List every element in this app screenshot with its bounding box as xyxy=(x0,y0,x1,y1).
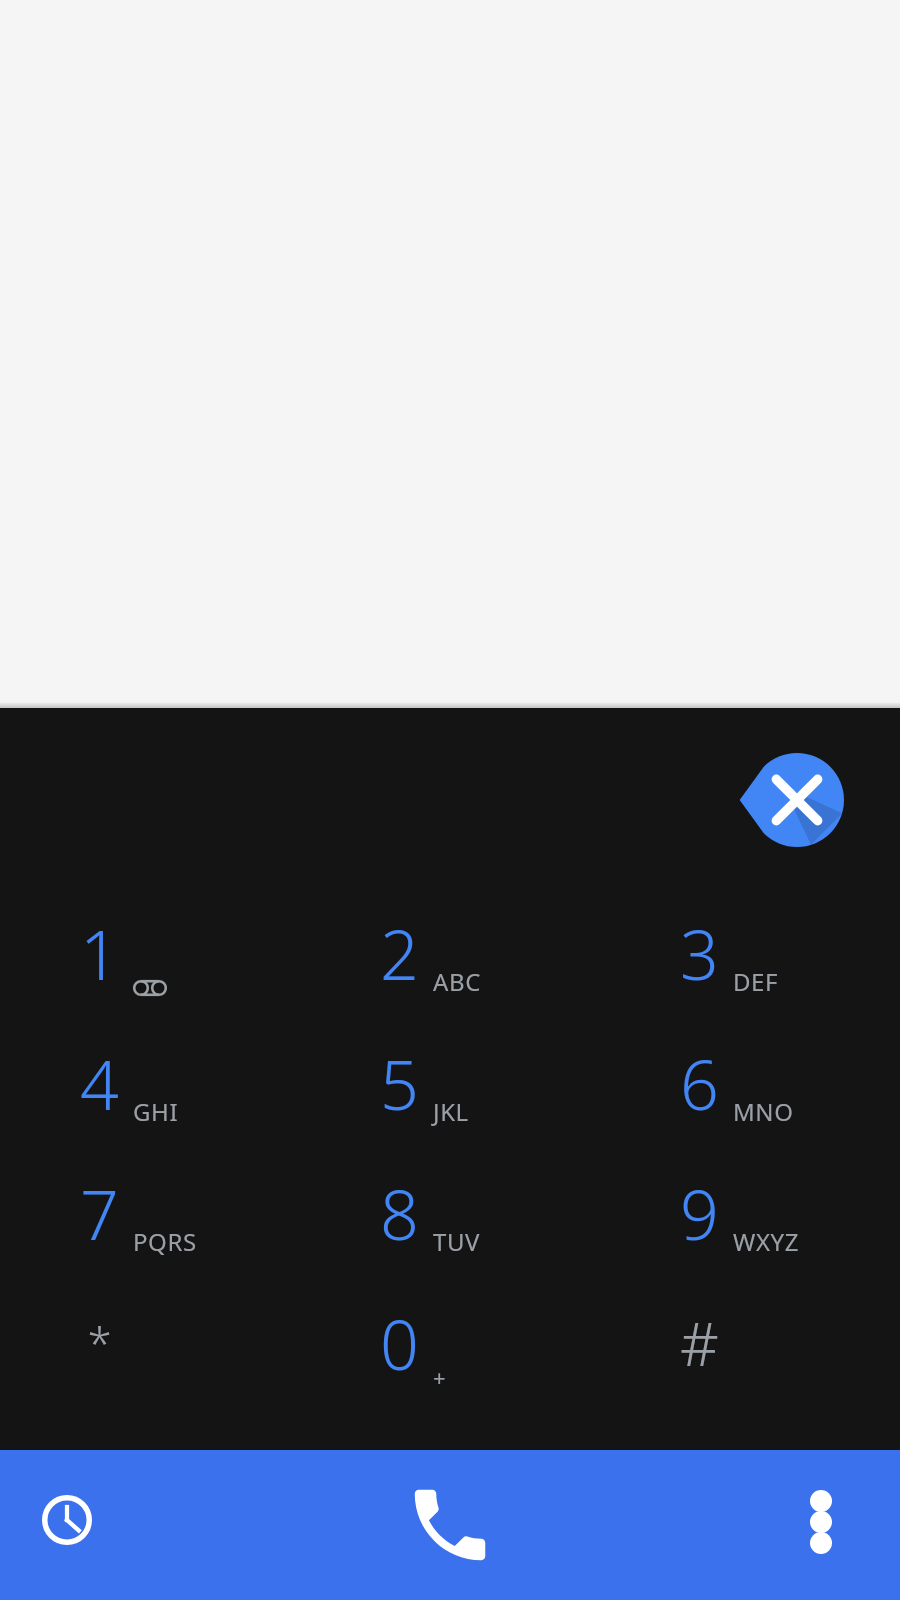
button[interactable]: 1 xyxy=(0,876,300,1006)
staticText: 6 xyxy=(680,1037,719,1130)
staticText: 4 xyxy=(80,1037,119,1130)
staticText: 0 xyxy=(380,1297,419,1390)
staticText: 2 xyxy=(380,907,419,1000)
staticText: 7 xyxy=(80,1167,119,1260)
staticText: 9 xyxy=(680,1167,719,1260)
staticText: GHI xyxy=(133,1095,179,1128)
staticText: # xyxy=(680,1302,719,1384)
staticText: 1 xyxy=(80,907,119,1000)
button[interactable]: 5 xyxy=(300,1006,600,1136)
staticText: MNO xyxy=(733,1095,794,1128)
button[interactable]: 2 xyxy=(300,876,600,1006)
button[interactable]: Backspace xyxy=(737,750,849,850)
button[interactable]: # xyxy=(600,1266,900,1396)
staticText: 8 xyxy=(380,1167,419,1260)
button[interactable]: 8 xyxy=(300,1136,600,1266)
button[interactable]: 4 xyxy=(0,1006,300,1136)
button[interactable]: More options xyxy=(600,1450,900,1600)
staticText: + xyxy=(433,1362,446,1392)
staticText: 3 xyxy=(680,907,719,1000)
staticText: * xyxy=(87,1313,112,1373)
staticText: WXYZ xyxy=(733,1225,800,1258)
button[interactable]: Recents xyxy=(0,1450,300,1600)
button[interactable]: * xyxy=(0,1266,300,1396)
staticText: ABC xyxy=(433,965,481,998)
button[interactable]: 6 xyxy=(600,1006,900,1136)
button[interactable]: Call xyxy=(300,1450,600,1600)
button[interactable]: 3 xyxy=(600,876,900,1006)
staticText: TUV xyxy=(433,1225,481,1258)
staticText: PQRS xyxy=(133,1225,197,1258)
button[interactable]: 9 xyxy=(600,1136,900,1266)
button[interactable]: 7 xyxy=(0,1136,300,1266)
staticText: 5 xyxy=(380,1037,419,1130)
staticText: DEF xyxy=(733,965,779,998)
button[interactable]: 0 xyxy=(300,1266,600,1396)
staticText: JKL xyxy=(433,1095,469,1128)
